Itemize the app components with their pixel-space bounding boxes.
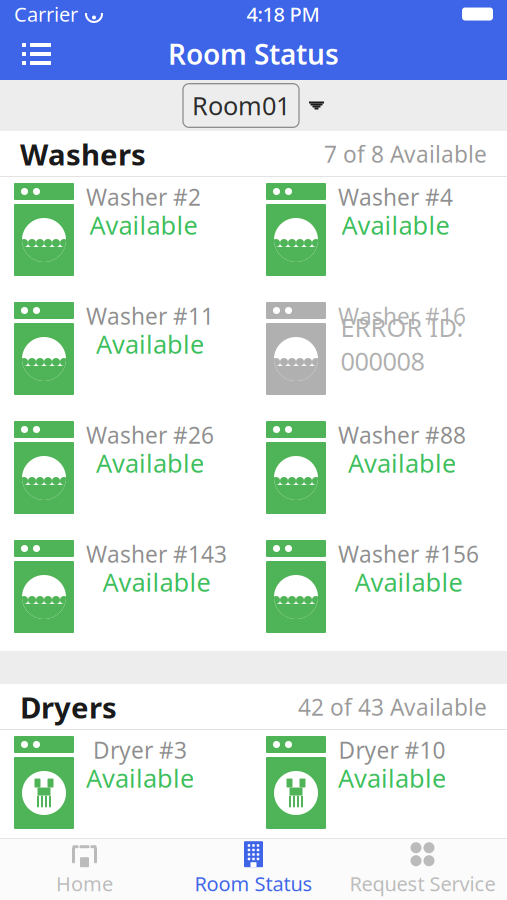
staticText: Washer #11 (86, 301, 214, 331)
button[interactable]: Washer #16 (266, 302, 507, 395)
staticText: Dryers (20, 687, 117, 726)
staticText: Washers (20, 134, 146, 173)
staticText: Washer #156 (338, 539, 479, 569)
staticText: Home (56, 870, 113, 897)
staticText: Room Status (194, 870, 312, 897)
staticText: Available (96, 327, 204, 361)
staticText: Dryer #10 (338, 735, 445, 765)
button[interactable]: Room Status (169, 835, 338, 900)
staticText: Available (348, 446, 456, 480)
button[interactable]: Washer #88 (266, 421, 507, 514)
button[interactable]: Washer #143 (14, 540, 266, 633)
staticText: Available (102, 565, 210, 599)
staticText: Washer #2 (86, 182, 201, 212)
staticText: Request Service (349, 870, 495, 897)
button[interactable]: Washer #26 (14, 421, 266, 514)
staticText: Room01 (192, 89, 290, 122)
button[interactable]: Washer #11 (14, 302, 266, 395)
button[interactable]: Washer #2 (14, 183, 266, 276)
staticText: 4:18 PM (246, 1, 319, 27)
staticText: Washer #26 (86, 420, 214, 450)
staticText: Washer #4 (338, 182, 453, 212)
staticText: Available (96, 446, 204, 480)
staticText: Available (89, 208, 197, 242)
button[interactable]: Menu (10, 31, 63, 77)
button[interactable]: Home (0, 835, 169, 900)
staticText: 7 of 8 Available (324, 139, 487, 169)
staticText: Room Status (168, 35, 339, 73)
staticText: ERROR ID: 000008 (340, 310, 463, 378)
staticText: Washer #16 (338, 301, 466, 331)
staticText: Washer #88 (338, 420, 466, 450)
staticText: Washer #143 (86, 539, 227, 569)
button[interactable]: Washer #4 (266, 183, 507, 276)
button[interactable]: Dryer #10 (266, 736, 507, 829)
button[interactable]: Dryer #3 (14, 736, 266, 829)
staticText: 42 of 43 Available (298, 692, 487, 722)
staticText: Available (338, 761, 446, 795)
staticText: Available (341, 208, 449, 242)
staticText: Dryer #3 (93, 735, 187, 765)
button[interactable]: Select room, Room01 (183, 84, 324, 127)
staticText: Carrier (14, 1, 78, 27)
staticText: Available (86, 761, 194, 795)
staticText: Available (354, 565, 462, 599)
button[interactable]: Request Service (338, 835, 507, 900)
button[interactable]: Washer #156 (266, 540, 507, 633)
